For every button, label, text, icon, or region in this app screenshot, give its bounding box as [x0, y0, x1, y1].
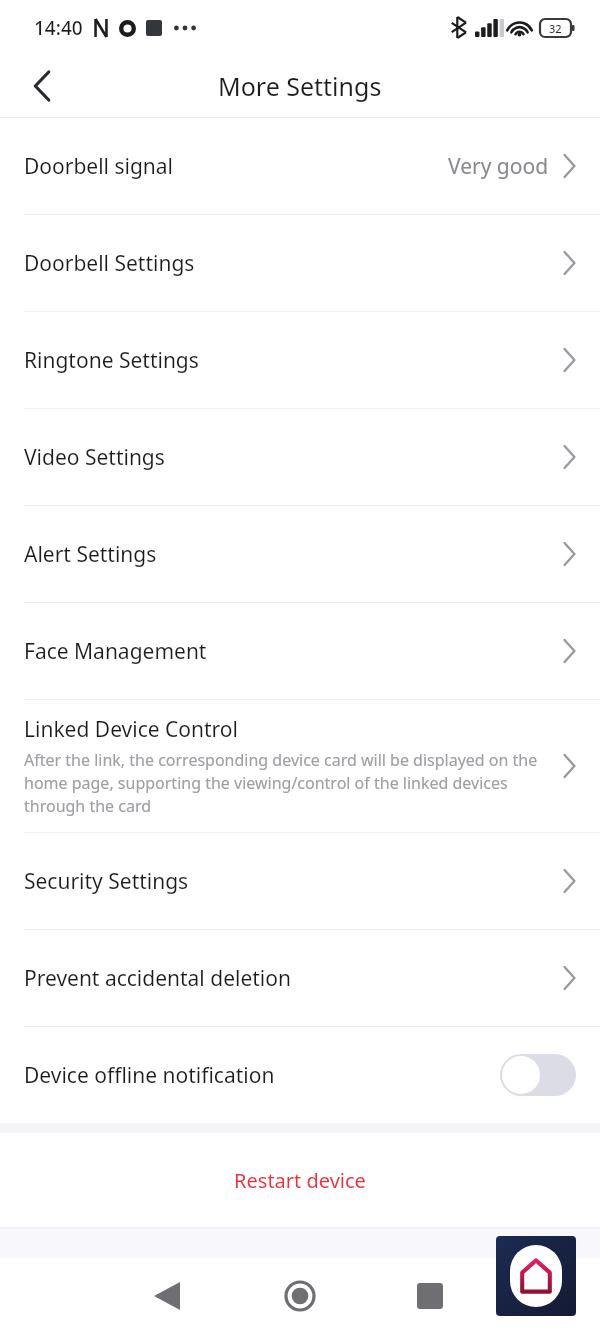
button[interactable]: Linked Device Control: [0, 700, 600, 832]
staticText: 32: [549, 21, 562, 36]
staticText: 14:40: [34, 15, 83, 41]
button[interactable]: Back: [16, 60, 68, 112]
staticText: Very good: [448, 152, 549, 181]
button[interactable]: Doorbell signal: [0, 118, 600, 214]
button[interactable]: Back: [137, 1266, 197, 1326]
staticText: Prevent accidental deletion: [24, 964, 291, 993]
staticText: Ringtone Settings: [24, 346, 199, 375]
button[interactable]: Device offline notification toggle: [500, 1054, 576, 1096]
button[interactable]: Doorbell Settings: [0, 215, 600, 311]
button[interactable]: Recent apps: [400, 1266, 460, 1326]
button[interactable]: Security Settings: [0, 833, 600, 929]
button[interactable]: Alert Settings: [0, 506, 600, 602]
staticText: Security Settings: [24, 867, 189, 896]
staticText: Face Management: [24, 637, 207, 666]
button[interactable]: Face Management: [0, 603, 600, 699]
staticText: Doorbell signal: [24, 152, 174, 181]
staticText: Linked Device Control: [24, 715, 238, 744]
button[interactable]: Restart device: [0, 1133, 600, 1227]
button[interactable]: Device offline notification: [0, 1027, 600, 1123]
staticText: Doorbell Settings: [24, 249, 195, 278]
button[interactable]: Home: [270, 1266, 330, 1326]
button[interactable]: Home app: [496, 1236, 576, 1316]
staticText: Video Settings: [24, 443, 165, 472]
button[interactable]: Ringtone Settings: [0, 312, 600, 408]
staticText: Device offline notification: [24, 1061, 275, 1090]
staticText: Alert Settings: [24, 540, 157, 569]
staticText: Restart device: [234, 1167, 366, 1194]
staticText: After the link, the corresponding device…: [24, 749, 545, 817]
button[interactable]: Prevent accidental deletion: [0, 930, 600, 1026]
staticText: More Settings: [218, 69, 382, 103]
button[interactable]: Video Settings: [0, 409, 600, 505]
